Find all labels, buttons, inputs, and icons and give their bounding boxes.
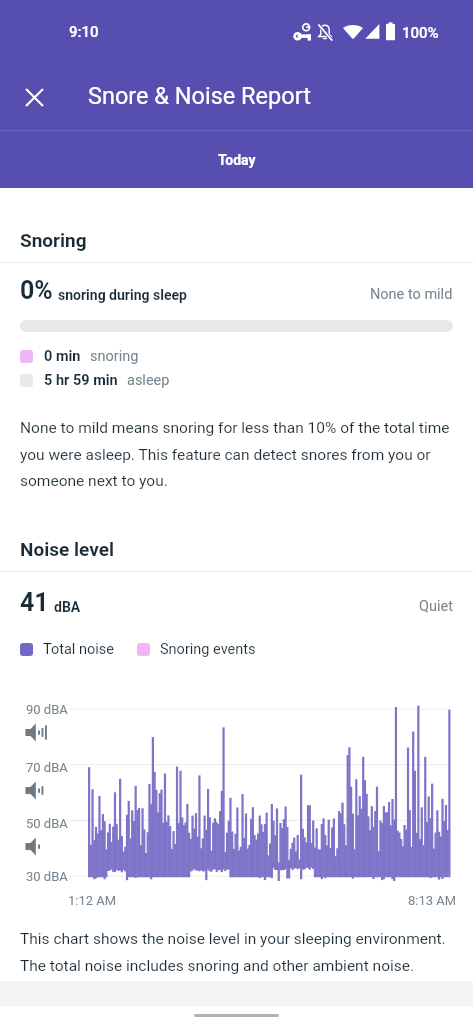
staticText: Snoring [20,229,87,251]
staticText: 0% [20,276,53,305]
staticText: Total noise [43,641,114,658]
staticText: 100% [402,24,439,42]
staticText: 5 hr 59 min [44,372,118,389]
staticText: snoring [90,348,139,365]
staticText: 41 [20,588,49,617]
staticText: 30 dBA [26,869,68,884]
staticText: This chart shows the noise level in your… [20,930,453,974]
staticText: snoring during sleep [58,287,187,303]
staticText: Quiet [419,598,453,615]
button[interactable]: Close [12,75,56,119]
staticText: 8:13 AM [408,893,457,908]
staticText: 1:12 AM [68,893,117,908]
staticText: Snore & Noise Report [88,82,311,110]
staticText: 70 dBA [26,760,68,775]
staticText: dBA [54,599,81,615]
staticText: None to mild means snoring for less than… [20,419,453,489]
staticText: 90 dBA [26,702,68,717]
button[interactable]: Today [0,131,473,188]
staticText: asleep [127,372,170,389]
staticText: Snoring events [160,641,256,658]
staticText: None to mild [370,286,453,303]
staticText: Noise level [20,538,114,560]
staticText: 50 dBA [26,816,68,831]
staticText: 9:10 [69,23,99,41]
staticText: 0 min [44,348,81,365]
staticText: Today [218,152,256,168]
